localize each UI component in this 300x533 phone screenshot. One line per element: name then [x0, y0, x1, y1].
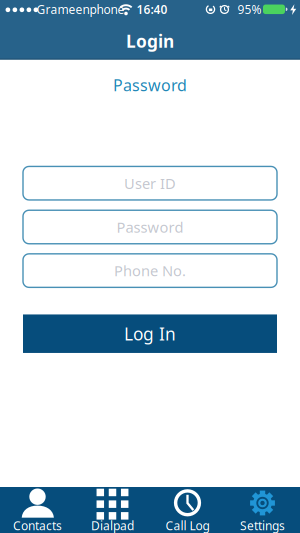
- staticText: Login: [126, 29, 174, 52]
- staticText: User ID: [124, 173, 176, 193]
- staticText: Password: [116, 217, 183, 237]
- button[interactable]: Dialpad: [75, 487, 150, 533]
- staticText: Phone No.: [114, 261, 186, 280]
- staticText: 95%: [237, 1, 261, 17]
- button[interactable]: Password: [113, 74, 187, 96]
- staticText: Settings: [240, 518, 285, 533]
- staticText: Dialpad: [91, 518, 134, 533]
- staticText: Log In: [124, 322, 176, 345]
- staticText: Grameenphone: [36, 1, 124, 17]
- staticText: Password: [113, 74, 187, 96]
- staticText: 16:40: [136, 1, 167, 17]
- button[interactable]: Log In: [23, 314, 277, 353]
- staticText: Contacts: [13, 518, 62, 533]
- button[interactable]: Phone No.: [23, 254, 277, 287]
- button[interactable]: Password: [23, 210, 277, 244]
- button[interactable]: Settings: [225, 487, 300, 533]
- staticText: Call Log: [165, 518, 209, 533]
- button[interactable]: Contacts: [0, 487, 75, 533]
- button[interactable]: User ID: [23, 166, 277, 200]
- button[interactable]: Call Log: [150, 487, 225, 533]
